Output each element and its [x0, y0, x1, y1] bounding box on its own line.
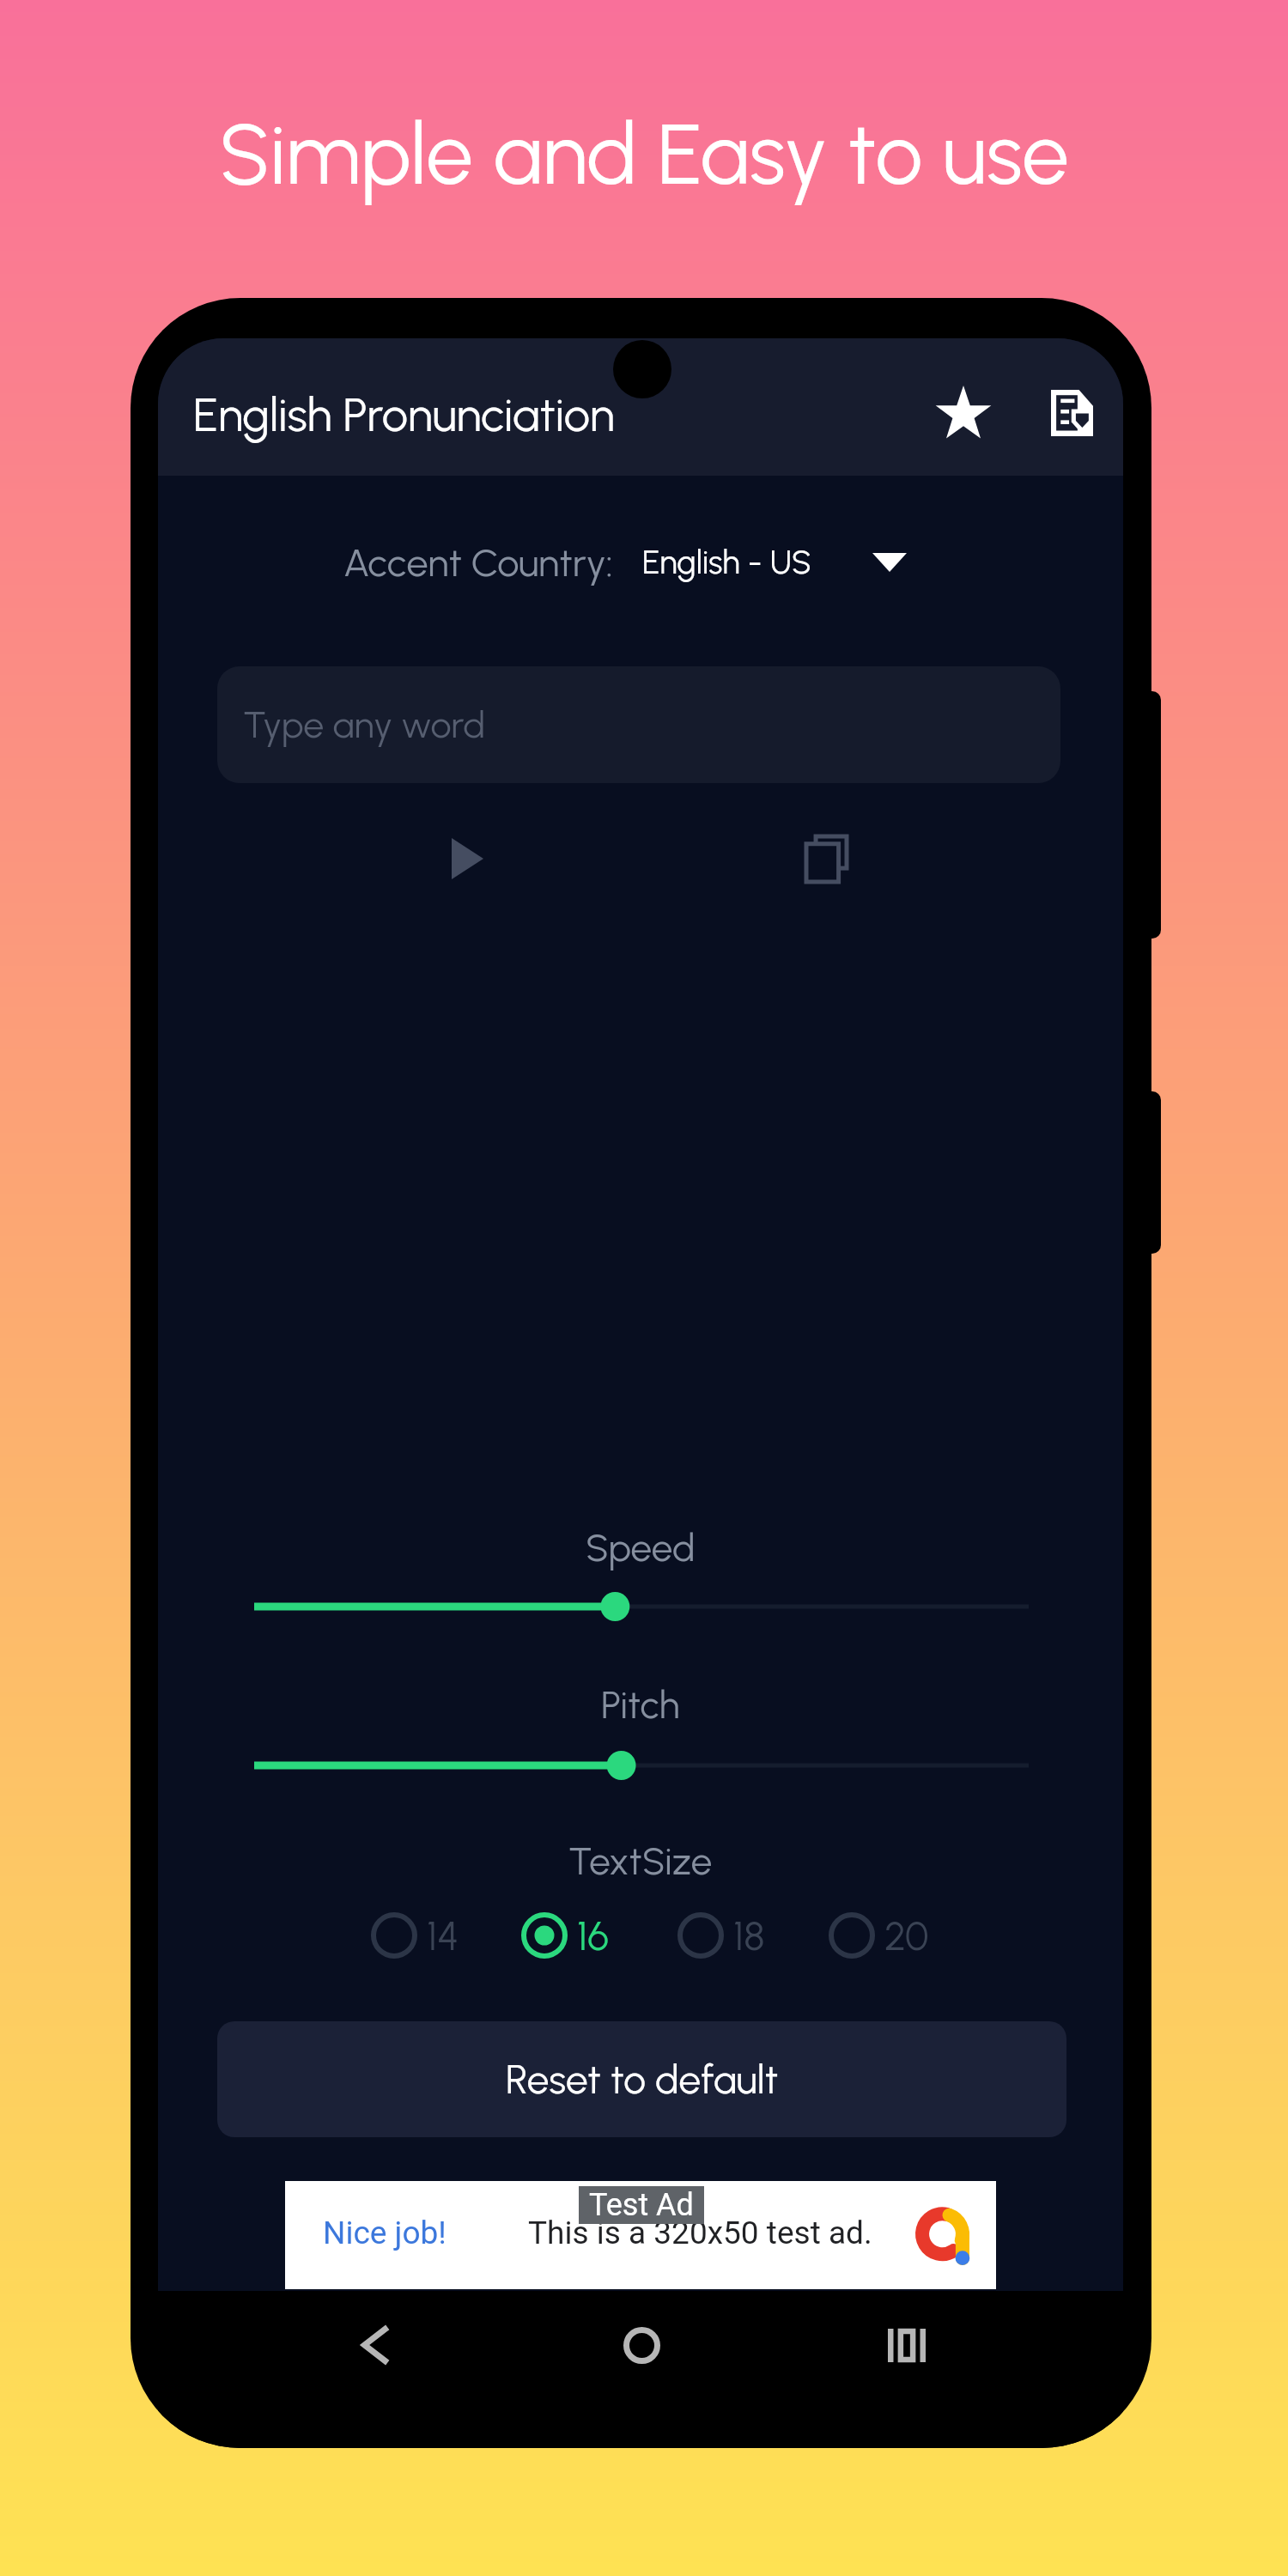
- staticText: TextSize: [568, 1838, 713, 1884]
- button[interactable]: Rate this app: [931, 380, 996, 445]
- button[interactable]: Accent Country:: [330, 534, 1077, 591]
- staticText: English - US: [642, 543, 812, 582]
- button[interactable]: Back: [331, 2302, 417, 2388]
- staticText: Speed: [586, 1525, 696, 1571]
- button[interactable]: Copy word: [783, 816, 869, 902]
- staticText: Reset to default: [506, 2056, 779, 2103]
- staticText: English Pronunciation: [193, 387, 615, 443]
- button[interactable]: Privacy policy: [1039, 380, 1104, 446]
- button[interactable]: Type any word: [217, 666, 1060, 783]
- button[interactable]: [254, 1748, 1029, 1783]
- button[interactable]: Nice job!: [285, 2181, 996, 2289]
- button[interactable]: Home: [598, 2302, 684, 2388]
- staticText: This is a 320x50 test ad.: [528, 2215, 872, 2251]
- button[interactable]: 14: [368, 1905, 459, 1965]
- staticText: Nice job!: [323, 2215, 447, 2251]
- button[interactable]: [254, 1589, 1029, 1624]
- staticText: 18: [733, 1912, 765, 1959]
- staticText: Type any word: [243, 702, 486, 747]
- button[interactable]: Play pronunciation: [424, 816, 510, 902]
- button[interactable]: Reset to default: [217, 2021, 1066, 2137]
- staticText: 20: [884, 1912, 929, 1959]
- button[interactable]: 18: [675, 1905, 765, 1965]
- staticText: Simple and Easy to use: [219, 104, 1069, 205]
- button[interactable]: 16: [519, 1905, 609, 1965]
- staticText: 16: [577, 1912, 609, 1959]
- button[interactable]: 20: [826, 1905, 929, 1965]
- staticText: Pitch: [601, 1682, 680, 1728]
- staticText: Accent Country:: [343, 539, 613, 586]
- button[interactable]: Recent apps: [864, 2302, 950, 2388]
- staticText: 14: [427, 1912, 459, 1959]
- staticText: Test Ad: [589, 2187, 694, 2223]
